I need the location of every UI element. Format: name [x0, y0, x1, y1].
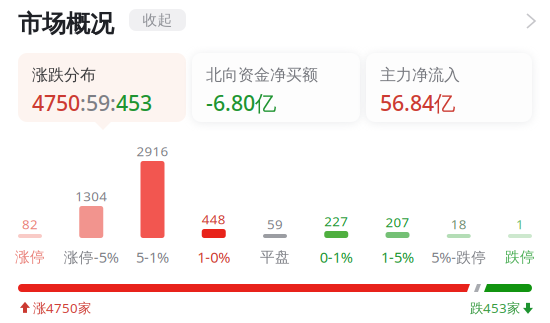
staticText: 56.84亿 — [380, 89, 455, 117]
staticText: : — [110, 89, 116, 117]
staticText: 涨4750家 — [33, 299, 91, 317]
staticText: 82 — [22, 215, 38, 233]
staticText: 跌453家 — [470, 299, 520, 317]
button[interactable]: 收起 — [129, 9, 186, 31]
button[interactable]: 主力净流入 — [366, 53, 532, 122]
staticText: 1-0% — [197, 247, 230, 267]
staticText: 涨跌分布 — [32, 65, 96, 85]
staticText: 4750 — [32, 89, 80, 117]
staticText: 跌停 — [505, 248, 535, 266]
staticText: 涨停 — [15, 248, 45, 266]
staticText: 453 — [116, 89, 152, 117]
staticText: : — [80, 89, 86, 117]
staticText: 主力净流入 — [380, 65, 460, 85]
staticText: 18 — [451, 215, 467, 233]
button[interactable]: 北向资金净买额 — [192, 53, 360, 122]
staticText: 59 — [267, 215, 283, 233]
button[interactable]: 涨跌分布 — [18, 53, 186, 122]
staticText: 1 — [516, 215, 524, 233]
button[interactable]: 展开详情 — [0, 0, 550, 323]
staticText: 5%-跌停 — [431, 247, 486, 267]
staticText: 平盘 — [260, 248, 290, 266]
staticText: 59 — [86, 89, 110, 117]
staticText: 涨停-5% — [64, 247, 119, 267]
staticText: 5-1% — [136, 247, 169, 267]
staticText: 207 — [385, 213, 409, 231]
staticText: 227 — [324, 212, 348, 230]
staticText: 1-5% — [381, 247, 414, 267]
staticText: 448 — [202, 210, 226, 228]
staticText: -6.80亿 — [206, 89, 276, 117]
staticText: 2916 — [136, 142, 168, 160]
staticText: 1304 — [75, 187, 107, 205]
staticText: 收起 — [142, 11, 172, 29]
staticText: 市场概况 — [18, 9, 114, 38]
staticText: 北向资金净买额 — [206, 65, 318, 85]
staticText: 0-1% — [320, 247, 353, 267]
